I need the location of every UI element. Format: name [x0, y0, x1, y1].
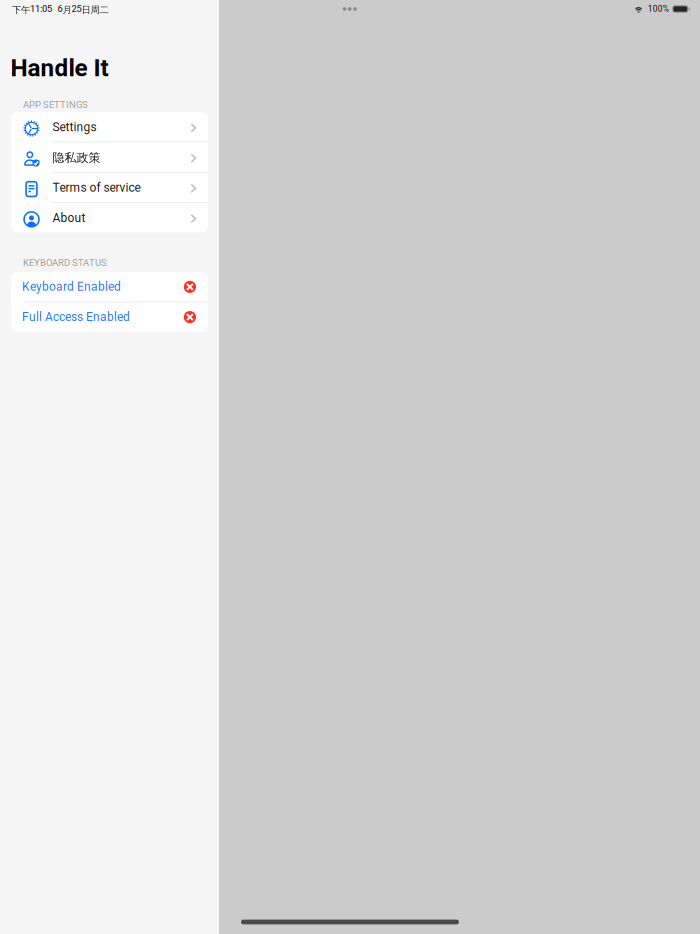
staticText: 6月25日周二 — [57, 2, 108, 16]
staticText: Keyboard Enabled — [22, 278, 121, 296]
button[interactable]: Full Access Enabled — [11, 302, 208, 332]
staticText: Full Access Enabled — [22, 308, 130, 326]
button[interactable]: About — [11, 203, 208, 232]
staticText: 100% — [648, 3, 669, 15]
staticText: Terms of service — [53, 179, 141, 197]
staticText: 隐私政策 — [53, 150, 101, 165]
button[interactable]: Terms of service — [11, 173, 208, 202]
staticText: Handle It — [10, 51, 108, 86]
staticText: APP SETTINGS — [23, 98, 88, 112]
button[interactable]: 隐私政策 — [11, 142, 208, 172]
staticText: About — [53, 209, 86, 227]
staticText: 下午11:05 — [12, 2, 52, 16]
button[interactable]: Settings — [11, 112, 208, 142]
staticText: KEYBOARD STATUS — [23, 256, 107, 270]
button[interactable]: Keyboard Enabled — [11, 272, 208, 302]
staticText: Settings — [53, 119, 97, 136]
